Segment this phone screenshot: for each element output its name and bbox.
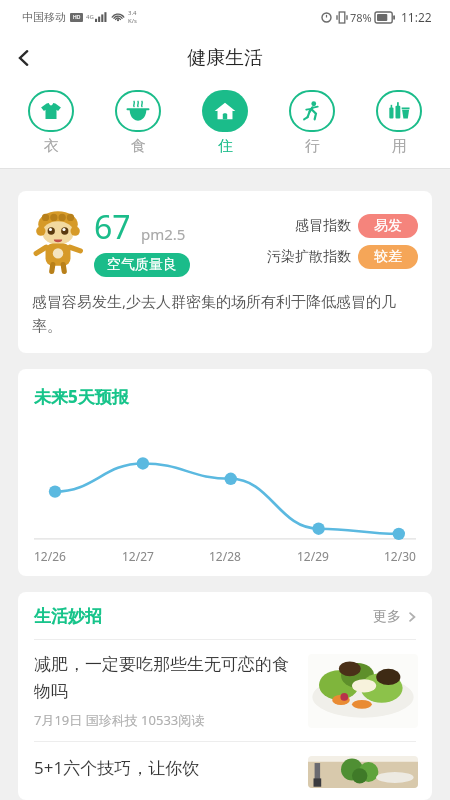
button[interactable]: 食 bbox=[102, 88, 174, 158]
staticText: 用 bbox=[392, 137, 407, 156]
staticText: 更多 bbox=[373, 608, 401, 626]
staticText: 3.4 bbox=[128, 9, 137, 17]
staticText: 较差 bbox=[374, 248, 402, 266]
button[interactable]: 生活妙招 bbox=[18, 592, 432, 639]
staticText: 感冒指数 bbox=[295, 217, 351, 235]
staticText: 12/29 bbox=[297, 548, 329, 564]
staticText: 生活妙招 bbox=[34, 606, 102, 627]
button[interactable]: 行 bbox=[276, 88, 348, 158]
staticText: 12/27 bbox=[122, 548, 154, 564]
staticText: 12/28 bbox=[209, 548, 241, 564]
staticText: 中国移动 bbox=[22, 10, 66, 24]
staticText: 污染扩散指数 bbox=[267, 248, 351, 266]
staticText: 5+1六个技巧，让你饮 bbox=[34, 756, 200, 779]
staticText: 行 bbox=[305, 137, 320, 156]
staticText: K/s bbox=[128, 17, 137, 25]
button[interactable]: 减肥，一定要吃那些生无可恋的食物吗 bbox=[18, 640, 432, 741]
staticText: 住 bbox=[218, 137, 233, 156]
staticText: 未来5天预报 bbox=[34, 385, 129, 408]
staticText: 健康生活 bbox=[187, 46, 263, 70]
staticText: 感冒容易发生,少去人群密集的场所有利于降低感冒的几率。 bbox=[32, 291, 418, 335]
staticText: 衣 bbox=[44, 137, 59, 156]
staticText: 12/26 bbox=[34, 548, 66, 564]
staticText: 7月19日 国珍科技 10533阅读 bbox=[34, 711, 205, 729]
staticText: 食 bbox=[131, 137, 146, 156]
staticText: 78% bbox=[350, 10, 372, 25]
button[interactable]: Back bbox=[0, 34, 48, 82]
staticText: 易发 bbox=[374, 217, 402, 235]
staticText: 12/30 bbox=[384, 548, 416, 564]
staticText: 67 bbox=[94, 205, 131, 249]
button[interactable]: 用 bbox=[363, 88, 435, 158]
staticText: 4G bbox=[86, 13, 94, 21]
staticText: pm2.5 bbox=[141, 224, 186, 244]
staticText: 空气质量良 bbox=[107, 256, 177, 274]
button[interactable]: 5+1六个技巧，让你饮 bbox=[18, 742, 432, 800]
staticText: HD bbox=[73, 14, 81, 21]
button[interactable]: 67 bbox=[18, 191, 432, 353]
button[interactable]: 衣 bbox=[15, 88, 87, 158]
button[interactable]: 未来5天预报 bbox=[18, 369, 432, 576]
staticText: 11:22 bbox=[401, 9, 432, 25]
staticText: 减肥，一定要吃那些生无可恋的食物吗 bbox=[34, 654, 296, 702]
button[interactable]: 住 bbox=[189, 88, 261, 158]
